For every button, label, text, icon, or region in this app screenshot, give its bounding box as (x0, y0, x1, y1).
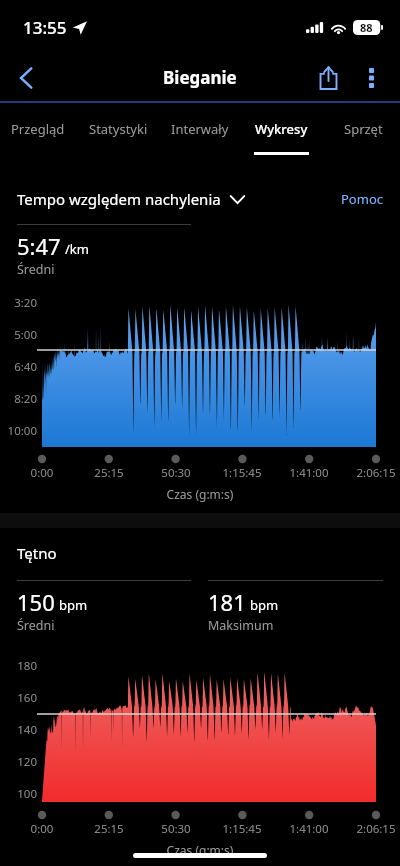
staticText: 1:15:45 (202, 465, 282, 481)
staticText: 100 (0, 786, 37, 802)
staticText: 1:41:00 (269, 821, 349, 837)
staticText: Maksimum (208, 617, 274, 634)
staticText: 50:30 (136, 821, 216, 837)
staticText: 140 (0, 722, 37, 738)
staticText: 10:00 (0, 423, 37, 439)
staticText: 6:40 (0, 359, 37, 375)
staticText: 5:47 (17, 231, 61, 261)
staticText: 5:00 (0, 327, 37, 343)
staticText: Interwały (171, 120, 229, 138)
staticText: Przegląd (11, 120, 65, 138)
staticText: 8:20 (0, 391, 37, 407)
staticText: Pomoc (341, 190, 383, 208)
staticText: 160 (0, 690, 37, 706)
staticText: Tętno (17, 543, 57, 563)
staticText: Czas (g:m:s) (0, 486, 400, 502)
staticText: 50:30 (136, 465, 216, 481)
button[interactable]: Share (306, 56, 350, 100)
staticText: Wykresy (255, 120, 308, 138)
staticText: 120 (0, 754, 37, 770)
staticText: 180 (0, 658, 37, 674)
button[interactable]: Interwały (158, 103, 242, 155)
button[interactable]: Back (5, 57, 47, 99)
staticText: bpm (250, 596, 279, 614)
staticText: 181 (208, 587, 246, 617)
staticText: /km (65, 240, 89, 258)
staticText: 0:00 (2, 465, 82, 481)
button[interactable]: Tempo względem nachylenia (17, 189, 245, 209)
staticText: Tempo względem nachylenia (17, 189, 221, 209)
staticText: 25:15 (69, 821, 149, 837)
staticText: Średni (17, 617, 55, 634)
button[interactable]: Pomoc (341, 190, 383, 208)
button[interactable]: Wykresy (239, 103, 323, 155)
staticText: 2:06:15 (336, 821, 400, 837)
staticText: 1:41:00 (269, 465, 349, 481)
staticText: 0:00 (2, 821, 82, 837)
staticText: Bieganie (163, 66, 237, 89)
staticText: 25:15 (69, 465, 149, 481)
staticText: 3:20 (0, 295, 37, 311)
staticText: Czas (g:m:s) (0, 842, 400, 858)
staticText: 88 (360, 20, 373, 35)
staticText: 1:15:45 (202, 821, 282, 837)
staticText: Statystyki (89, 120, 148, 138)
staticText: 13:55 (23, 16, 67, 39)
button[interactable]: Sprzęt (321, 103, 400, 155)
staticText: bpm (59, 596, 88, 614)
staticText: 2:06:15 (336, 465, 400, 481)
button[interactable]: More options (350, 56, 392, 100)
staticText: Średni (17, 261, 55, 278)
staticText: Sprzęt (344, 120, 383, 138)
button[interactable]: Statystyki (76, 103, 160, 155)
button[interactable]: Przegląd (0, 103, 80, 155)
staticText: 150 (17, 587, 55, 617)
